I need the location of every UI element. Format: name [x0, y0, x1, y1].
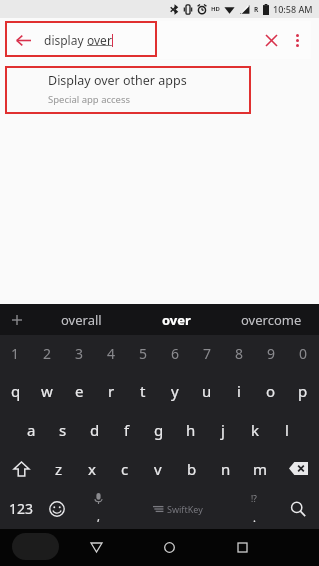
staticText: 7 [203, 344, 212, 363]
staticText: overcome [241, 311, 302, 329]
button[interactable]: z [42, 449, 75, 488]
button[interactable]: 4 [95, 335, 127, 371]
staticText: 8 [235, 344, 244, 363]
button[interactable]: Voice input [72, 488, 124, 529]
staticText: !? [251, 493, 257, 504]
staticText: e [75, 381, 84, 401]
staticText: m [253, 459, 268, 479]
staticText: i [237, 381, 241, 401]
button[interactable]: u [191, 371, 223, 410]
staticText: n [221, 459, 231, 479]
button[interactable]: k [239, 410, 271, 449]
button[interactable]: e [63, 371, 95, 410]
button[interactable]: n [209, 449, 243, 488]
button[interactable]: f [111, 410, 143, 449]
staticText: 6 [171, 344, 180, 363]
button[interactable]: o [255, 371, 287, 410]
button[interactable]: 9 [255, 335, 287, 371]
button[interactable]: p [287, 371, 319, 410]
button[interactable]: Clear [257, 26, 285, 54]
staticText: l [285, 420, 289, 440]
staticText: 5 [139, 344, 148, 363]
staticText: , [97, 509, 100, 524]
button[interactable]: q [0, 371, 31, 410]
button[interactable]: 1 [0, 335, 31, 371]
staticText: HD [211, 5, 220, 13]
button[interactable]: More options [285, 28, 309, 52]
button[interactable]: Backspace [277, 449, 319, 488]
staticText: R [254, 5, 259, 14]
staticText: o [266, 381, 276, 401]
button[interactable]: y [159, 371, 191, 410]
staticText: q [11, 381, 21, 401]
staticText: t [140, 381, 146, 401]
button[interactable]: h [175, 410, 207, 449]
button[interactable]: 3 [63, 335, 95, 371]
staticText: d [90, 420, 100, 440]
button[interactable]: t [127, 371, 159, 410]
button[interactable]: d [79, 410, 111, 449]
button[interactable]: w [31, 371, 63, 410]
staticText: 4 [107, 344, 116, 363]
staticText: SwiftKey [167, 503, 203, 515]
staticText: display [44, 32, 87, 48]
button[interactable]: Emoji [42, 488, 72, 529]
staticText: g [154, 420, 164, 440]
staticText: 3 [75, 344, 84, 363]
staticText: f [124, 420, 130, 440]
button[interactable]: i [223, 371, 255, 410]
staticText: v [154, 459, 162, 479]
button[interactable]: l [271, 410, 303, 449]
staticText: p [298, 381, 308, 401]
button[interactable]: 7 [191, 335, 223, 371]
button[interactable]: over [129, 304, 224, 335]
button[interactable]: b [175, 449, 209, 488]
staticText: s [59, 420, 67, 440]
staticText: a [27, 420, 36, 440]
staticText: z [55, 459, 63, 479]
staticText: 0 [299, 344, 308, 363]
button[interactable]: v [141, 449, 175, 488]
button[interactable]: 5 [127, 335, 159, 371]
button[interactable]: g [143, 410, 175, 449]
button[interactable]: Display over other apps [0, 62, 319, 120]
staticText: h [186, 420, 196, 440]
button[interactable]: 0 [287, 335, 319, 371]
button[interactable]: Back [10, 27, 36, 53]
staticText: Display over other apps [48, 72, 187, 89]
staticText: over [162, 311, 191, 329]
button[interactable]: Recent apps [206, 529, 279, 566]
staticText: x [88, 459, 96, 479]
button[interactable]: Back [60, 529, 133, 566]
staticText: c [121, 459, 129, 479]
staticText: y [171, 381, 179, 401]
staticText: 2 [43, 344, 52, 363]
button[interactable]: 6 [159, 335, 191, 371]
button[interactable]: a [16, 410, 47, 449]
button[interactable]: Add word [0, 304, 34, 335]
button[interactable]: Search [277, 488, 319, 529]
button[interactable]: SwiftKey [124, 488, 231, 529]
button[interactable]: 123 [0, 488, 42, 529]
staticText: j [221, 420, 225, 440]
staticText: overall [61, 311, 102, 329]
staticText: u [202, 381, 212, 401]
button[interactable]: Home [133, 529, 206, 566]
button[interactable]: !? [231, 488, 277, 529]
staticText: . [253, 510, 256, 525]
button[interactable]: x [75, 449, 108, 488]
button[interactable]: 8 [223, 335, 255, 371]
staticText: 10:58 AM [273, 3, 313, 15]
staticText: k [251, 420, 260, 440]
button[interactable]: s [47, 410, 79, 449]
button[interactable]: r [95, 371, 127, 410]
staticText: r [108, 381, 115, 401]
button[interactable]: overcome [224, 304, 319, 335]
button[interactable]: overall [34, 304, 129, 335]
button[interactable]: m [243, 449, 277, 488]
button[interactable]: j [207, 410, 239, 449]
button[interactable]: c [108, 449, 141, 488]
button[interactable]: Shift [0, 449, 42, 488]
button[interactable] [12, 533, 59, 560]
button[interactable]: 2 [31, 335, 63, 371]
